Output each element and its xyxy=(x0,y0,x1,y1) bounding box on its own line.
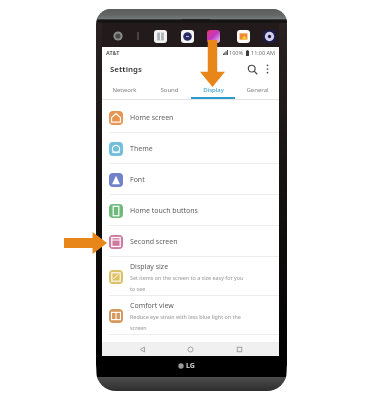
button[interactable]: Home screen xyxy=(102,102,279,133)
button[interactable]: Second screen xyxy=(102,226,279,257)
button[interactable]: Display xyxy=(191,80,235,99)
staticText: Sound xyxy=(160,86,179,94)
button[interactable]: App xyxy=(181,30,194,43)
staticText: Display size xyxy=(130,262,169,272)
staticText: LG xyxy=(186,361,195,371)
button[interactable]: Sound xyxy=(147,80,191,99)
button[interactable]: Back xyxy=(134,342,151,356)
button[interactable]: Recents xyxy=(231,342,248,356)
staticText: Home touch buttons xyxy=(130,206,198,216)
button[interactable]: Theme xyxy=(102,133,279,164)
staticText: Second screen xyxy=(130,237,178,247)
button[interactable]: Display size xyxy=(102,257,279,296)
button[interactable]: App xyxy=(154,30,167,43)
button[interactable]: Home xyxy=(182,342,199,356)
staticText: General xyxy=(246,86,269,94)
staticText: 11:00 AM xyxy=(251,49,275,56)
staticText: Home screen xyxy=(130,113,174,123)
staticText: Network xyxy=(112,86,137,94)
staticText: Settings xyxy=(110,64,142,75)
button[interactable]: Home touch buttons xyxy=(102,195,279,226)
button[interactable]: Network xyxy=(102,80,147,99)
staticText: Display xyxy=(203,86,224,94)
button[interactable]: Font xyxy=(102,164,279,195)
button[interactable]: App xyxy=(263,30,276,43)
button[interactable]: Search xyxy=(243,59,261,79)
button[interactable]: General xyxy=(235,80,279,99)
staticText: Reduce eye strain with less blue light o… xyxy=(130,313,241,331)
button[interactable]: Comfort view xyxy=(102,296,279,335)
staticText: Comfort view xyxy=(130,301,174,311)
staticText: AT&T xyxy=(106,49,120,56)
button[interactable]: More options xyxy=(261,59,274,79)
staticText: Theme xyxy=(130,144,153,154)
button[interactable]: App xyxy=(207,30,220,43)
staticText: Set items on the screen to a size easy f… xyxy=(130,274,244,292)
button[interactable]: App xyxy=(237,30,250,43)
staticText: 100% xyxy=(229,49,244,56)
staticText: Font xyxy=(130,175,145,185)
